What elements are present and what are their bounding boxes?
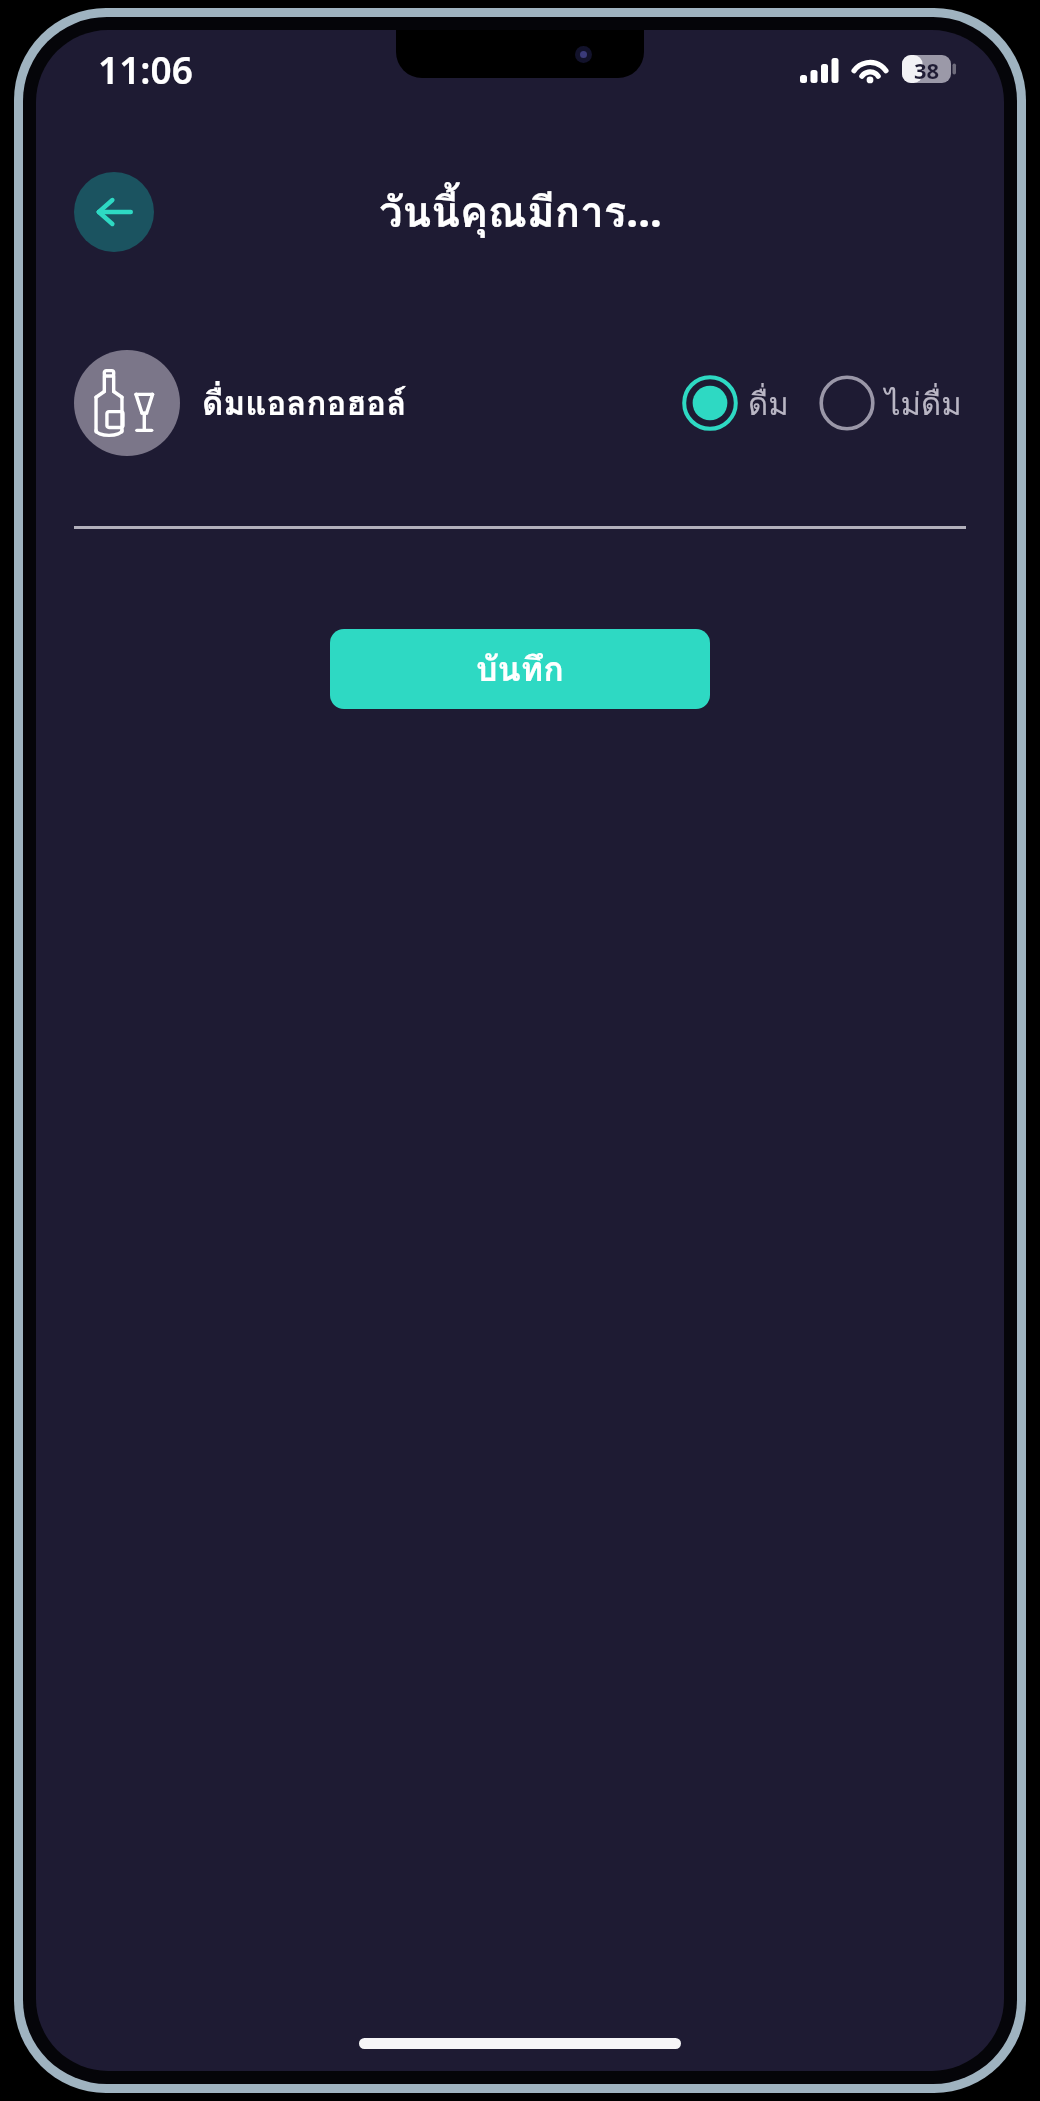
button[interactable]: ดื่ม: [678, 369, 793, 437]
button[interactable]: Back: [74, 172, 154, 252]
staticText: ดื่ม: [748, 379, 789, 428]
staticText: 38: [902, 55, 951, 83]
staticText: 11:06: [98, 44, 193, 94]
staticText: วันนี้คุณมีการ...: [379, 179, 662, 246]
button[interactable]: ไม่ดื่ม: [815, 369, 966, 437]
button[interactable]: บันทึก: [330, 629, 710, 709]
staticText: ดื่มแอลกอฮอล์: [202, 377, 407, 429]
staticText: ไม่ดื่ม: [885, 379, 962, 428]
staticText: บันทึก: [476, 642, 564, 696]
